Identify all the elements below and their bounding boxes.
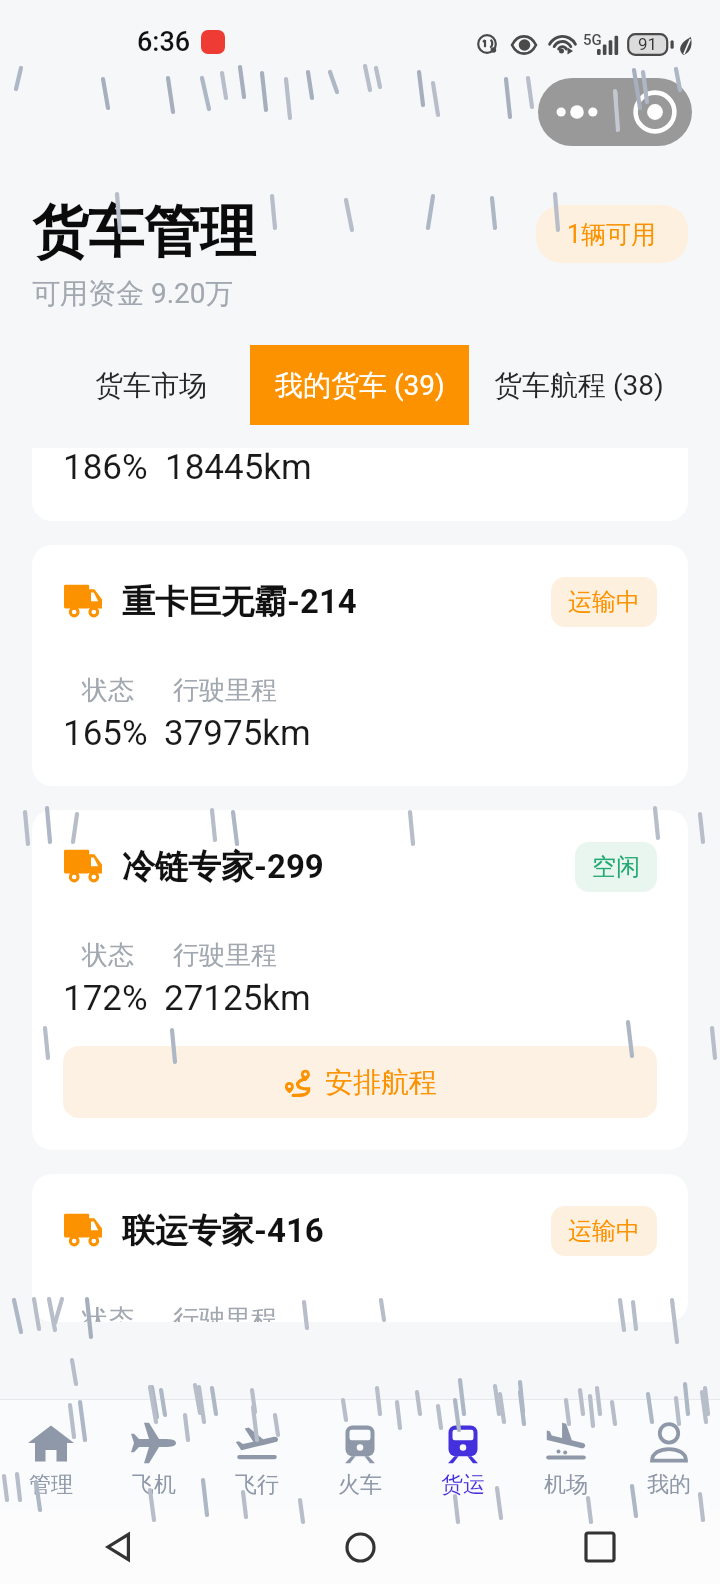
staticText: 我的 [647, 1471, 691, 1499]
staticText: 186% [63, 448, 148, 488]
button[interactable]: Home [240, 1510, 480, 1584]
staticText: 重卡巨无霸-214 [122, 581, 357, 623]
button[interactable]: 飞机 [102, 1399, 205, 1510]
button[interactable]: 飞行 [205, 1399, 308, 1510]
staticText: 18445km [165, 448, 312, 488]
staticText: 联运专家-416 [122, 1210, 324, 1252]
staticText: 运输中 [568, 587, 640, 617]
staticText: 状态 [82, 939, 134, 972]
staticText: 1辆可用 [567, 219, 657, 250]
staticText: 飞机 [132, 1471, 176, 1499]
button[interactable]: 管理 [0, 1399, 102, 1510]
button[interactable]: Recents [480, 1510, 720, 1584]
staticText: 状态 [82, 1303, 134, 1322]
staticText: 货车市场 [95, 368, 207, 403]
button[interactable]: 重卡巨无霸-214 [32, 545, 688, 786]
button[interactable]: 火车 [308, 1399, 411, 1510]
staticText: 5G [583, 31, 602, 49]
button[interactable]: 我的 [617, 1399, 720, 1510]
staticText: 运输中 [568, 1216, 640, 1246]
button[interactable]: Close mini program [618, 78, 692, 146]
staticText: 状态 [82, 674, 134, 707]
button[interactable]: 联运专家-416 [32, 1174, 688, 1322]
staticText: 172% [63, 978, 148, 1019]
button[interactable]: Back [0, 1510, 240, 1584]
staticText: 27125km [164, 978, 311, 1019]
button[interactable]: 186% [32, 448, 688, 521]
button[interactable]: 1辆可用 [536, 205, 688, 263]
button[interactable]: More options [538, 78, 616, 146]
staticText: 行驶里程 [173, 674, 277, 707]
staticText: 165% [63, 713, 148, 754]
staticText: 空闲 [592, 852, 640, 882]
button[interactable]: 我的货车 (39) [250, 345, 469, 425]
staticText: 6:36 [137, 26, 191, 58]
staticText: 可用资金 9.20万 [32, 276, 234, 311]
staticText: 我的货车 (39) [275, 368, 445, 403]
staticText: 行驶里程 [173, 1303, 277, 1322]
staticText: 91 [638, 34, 658, 54]
staticText: 机场 [544, 1471, 588, 1499]
button[interactable]: 货运 [411, 1399, 514, 1510]
staticText: 冷链专家-299 [122, 846, 324, 888]
staticText: 货车航程 (38) [494, 368, 664, 403]
button[interactable]: 冷链专家-299 [32, 810, 688, 1150]
button[interactable]: 机场 [514, 1399, 617, 1510]
staticText: 行驶里程 [173, 939, 277, 972]
staticText: 飞行 [235, 1471, 279, 1499]
button[interactable]: 货车市场 [56, 345, 246, 425]
staticText: 火车 [338, 1471, 382, 1499]
button[interactable]: 安排航程 [63, 1046, 657, 1118]
staticText: 安排航程 [325, 1065, 437, 1100]
staticText: 货运 [441, 1471, 485, 1499]
staticText: 管理 [29, 1471, 73, 1499]
button[interactable]: 货车航程 (38) [473, 345, 685, 425]
staticText: 货车管理 [32, 197, 256, 268]
staticText: 37975km [164, 713, 311, 754]
